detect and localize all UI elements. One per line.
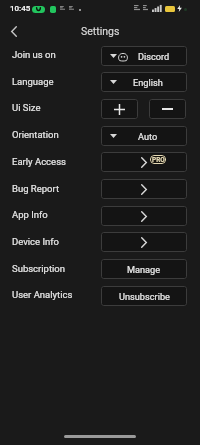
button[interactable]: Early Access <box>101 152 187 172</box>
button[interactable]: Bug Report <box>101 179 187 199</box>
button[interactable]: Join us on Discord <box>101 46 187 66</box>
staticText: Join us on <box>12 49 56 60</box>
button[interactable]: Device Info <box>101 232 187 252</box>
button[interactable]: App Info <box>101 206 187 226</box>
staticText: Device Info <box>12 236 60 247</box>
button[interactable]: Decrease UI size <box>149 99 186 119</box>
staticText: Language <box>12 76 54 87</box>
staticText: Ui Size <box>12 102 41 113</box>
staticText: Manage <box>127 264 161 275</box>
staticText: Bug Report <box>12 183 60 194</box>
staticText: English <box>133 77 163 88</box>
staticText: PRO <box>152 156 165 164</box>
staticText: Unsubscribe <box>119 291 170 302</box>
staticText: User Analytics <box>12 289 73 300</box>
button[interactable]: Increase UI size <box>101 99 138 119</box>
staticText: 10:45 <box>10 4 31 13</box>
button[interactable]: Orientation: Auto <box>101 126 187 146</box>
button[interactable]: Unsubscribe from user analytics <box>101 286 187 306</box>
staticText: Settings <box>81 25 120 37</box>
button[interactable]: Language: English <box>101 72 187 92</box>
staticText: Auto <box>138 131 158 142</box>
staticText: Discord <box>138 51 170 62</box>
button[interactable]: Manage subscription <box>101 259 187 279</box>
staticText: App Info <box>12 209 48 220</box>
button[interactable]: Back <box>5 22 22 40</box>
staticText: Subscription <box>12 263 66 274</box>
staticText: Orientation <box>12 129 59 140</box>
staticText: Early Access <box>12 156 66 167</box>
